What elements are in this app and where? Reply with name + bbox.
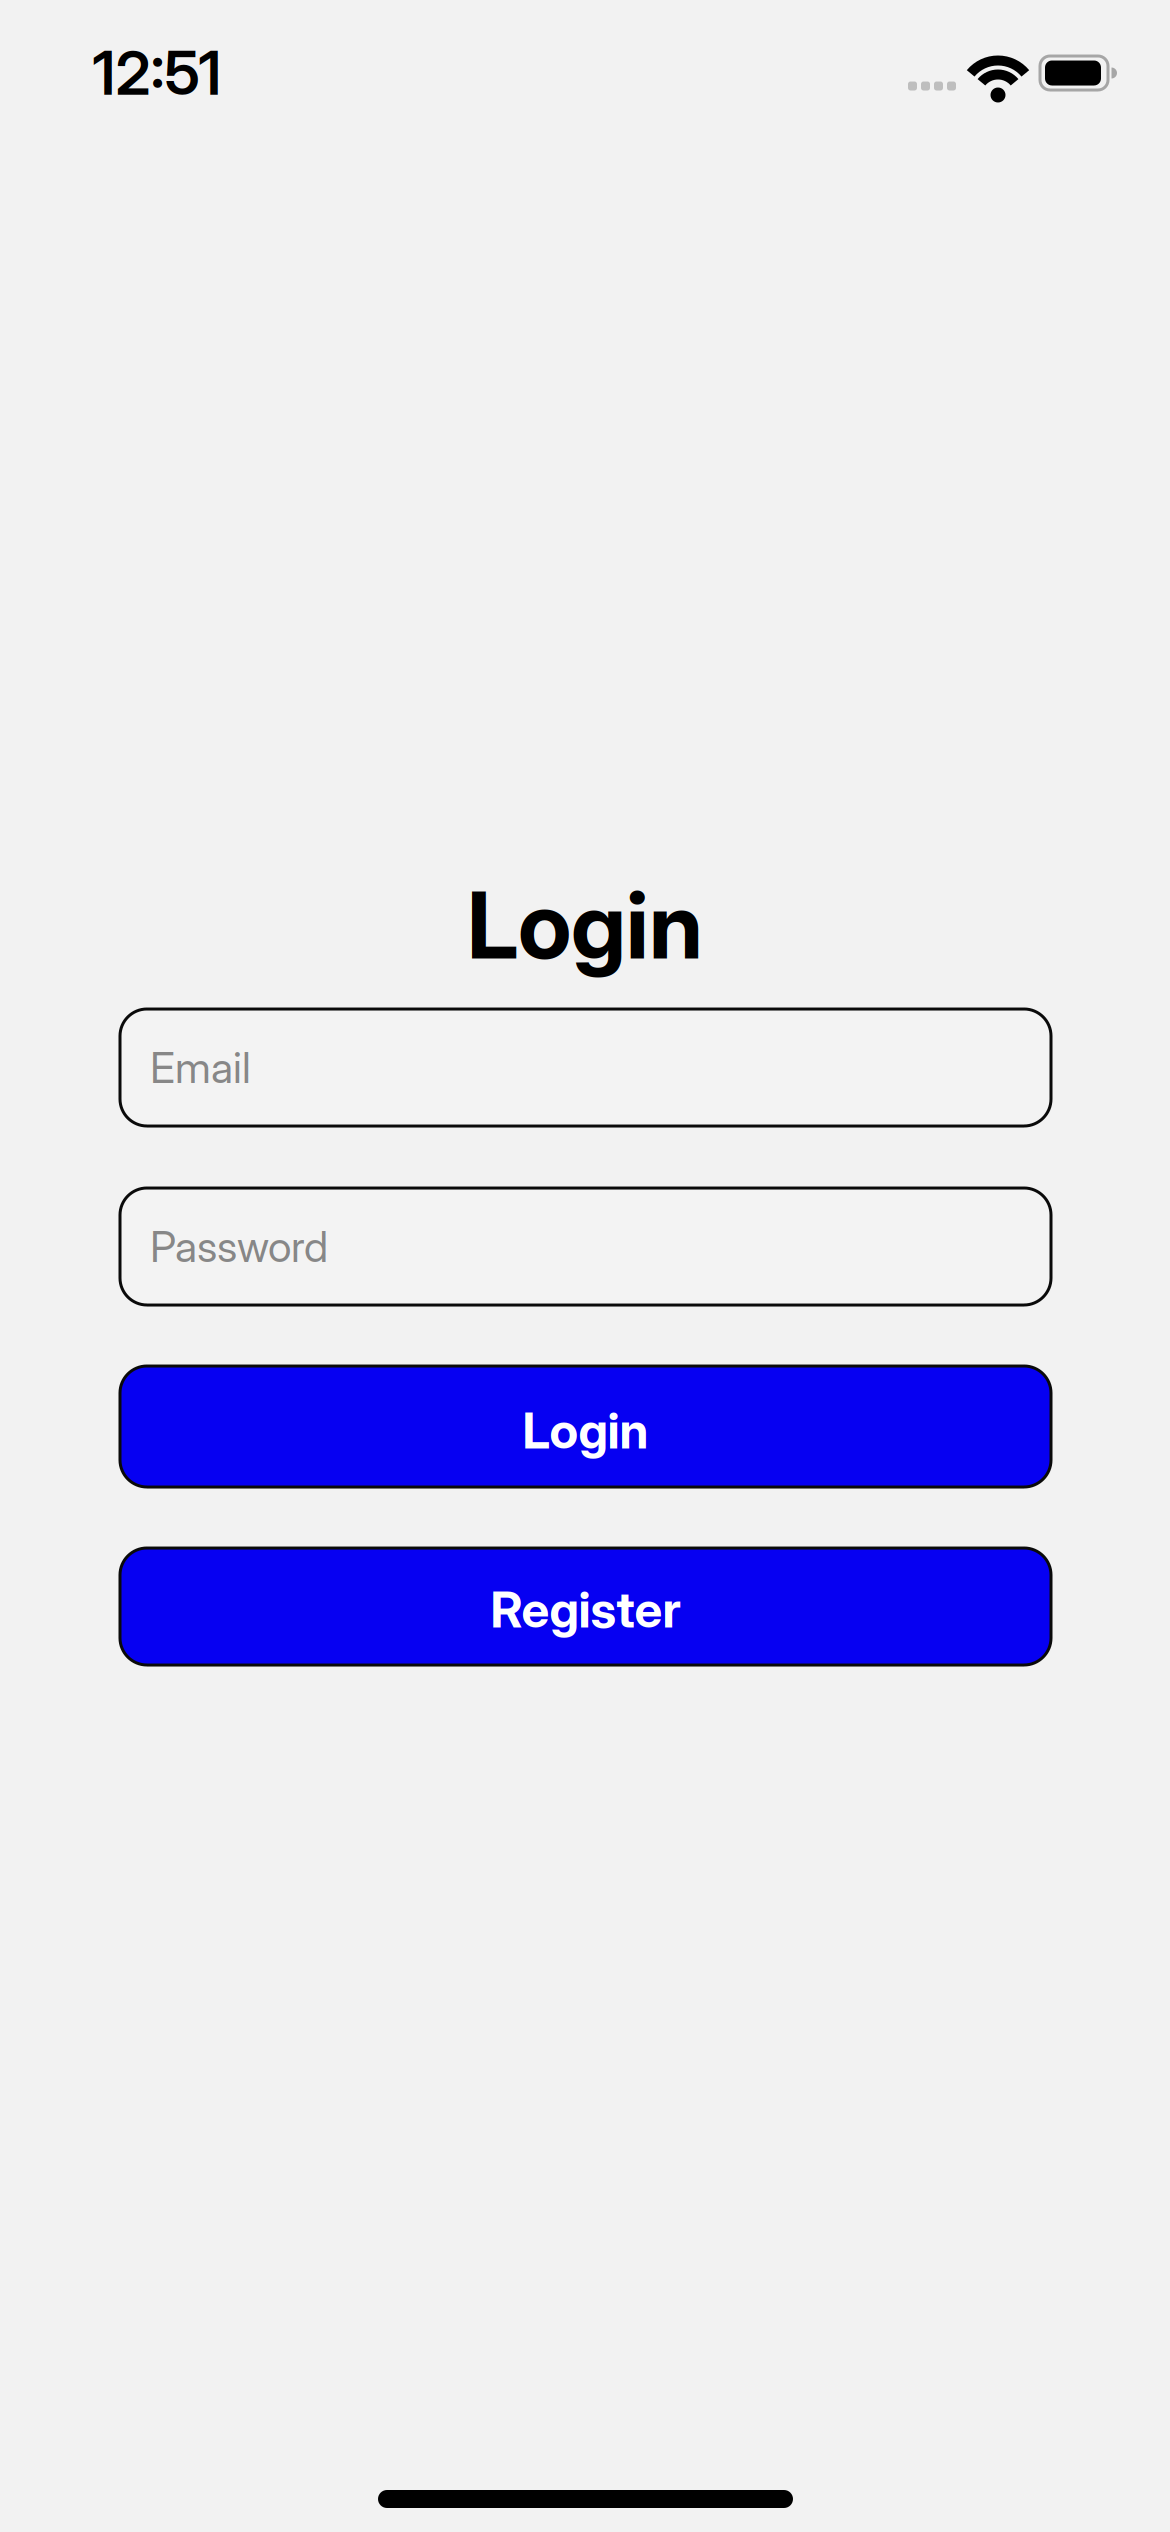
- staticText: Register: [490, 1580, 680, 1639]
- button[interactable]: Login: [120, 1366, 1051, 1487]
- staticText: Login: [522, 1401, 648, 1460]
- button[interactable]: Register: [120, 1548, 1051, 1665]
- staticText: Email: [150, 1042, 251, 1093]
- button[interactable]: Email: [120, 1009, 1051, 1126]
- button[interactable]: Password: [120, 1188, 1051, 1305]
- staticText: Login: [467, 871, 703, 979]
- staticText: 12:51: [92, 38, 221, 108]
- staticText: Password: [150, 1221, 328, 1272]
